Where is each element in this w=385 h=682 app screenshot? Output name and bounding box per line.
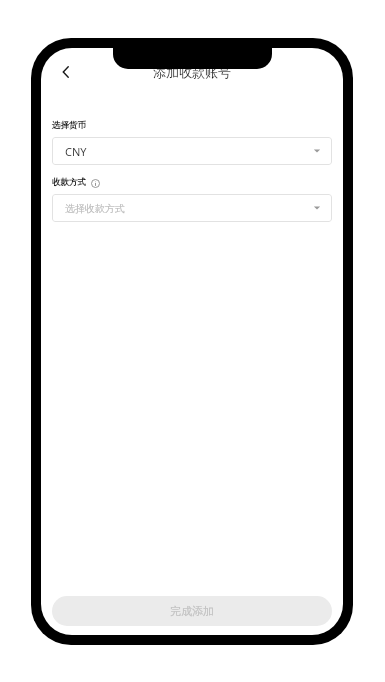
staticText: 添加收款账号 xyxy=(153,64,231,80)
button[interactable]: Back xyxy=(49,55,83,89)
staticText: 收款方式 xyxy=(52,177,86,188)
staticText: CNY xyxy=(65,144,87,159)
button[interactable]: Info xyxy=(90,178,100,188)
button[interactable]: 选择收款方式 xyxy=(52,194,332,222)
button[interactable]: CNY xyxy=(52,137,332,165)
staticText: 选择收款方式 xyxy=(65,202,125,215)
button[interactable]: 完成添加 xyxy=(52,596,332,626)
staticText: 选择货币 xyxy=(52,120,86,131)
staticText: 完成添加 xyxy=(170,604,214,618)
